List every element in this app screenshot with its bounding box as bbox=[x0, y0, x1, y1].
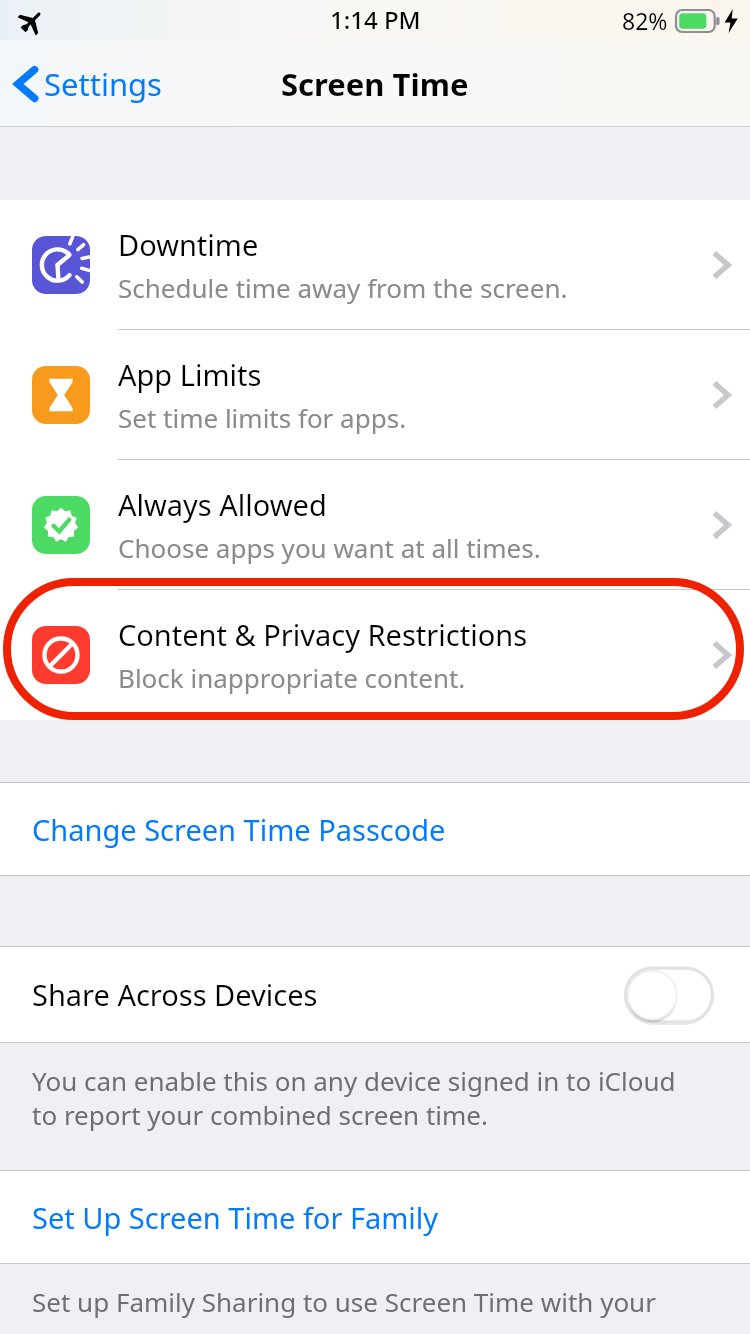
button[interactable]: Content & Privacy Restrictions bbox=[0, 590, 750, 720]
staticText: Content & Privacy Restrictions bbox=[118, 615, 528, 654]
button[interactable]: App Limits bbox=[0, 330, 750, 460]
staticText: You can enable this on any device signed… bbox=[32, 1063, 706, 1132]
button[interactable]: Change Screen Time Passcode bbox=[0, 783, 750, 875]
staticText: Set Up Screen Time for Family bbox=[32, 1198, 439, 1237]
staticText: Choose apps you want at all times. bbox=[118, 530, 541, 565]
staticText: 1:14 PM bbox=[330, 3, 421, 36]
staticText: Downtime bbox=[118, 225, 259, 264]
button[interactable]: Always Allowed bbox=[0, 460, 750, 590]
staticText: Set time limits for apps. bbox=[118, 400, 407, 435]
button[interactable]: Share Across Devices toggle, off bbox=[624, 967, 714, 1023]
button[interactable]: Downtime bbox=[0, 200, 750, 330]
staticText: 82% bbox=[622, 5, 668, 36]
button[interactable]: Settings bbox=[0, 57, 176, 111]
button[interactable]: Share Across Devices bbox=[0, 947, 750, 1042]
staticText: Settings bbox=[44, 63, 162, 105]
staticText: Set up Family Sharing to use Screen Time… bbox=[32, 1284, 706, 1320]
staticText: Screen Time bbox=[281, 63, 469, 105]
staticText: Share Across Devices bbox=[32, 975, 624, 1014]
staticText: Block inappropriate content. bbox=[118, 660, 466, 695]
staticText: App Limits bbox=[118, 355, 262, 394]
button[interactable]: Set Up Screen Time for Family bbox=[0, 1171, 750, 1263]
staticText: Always Allowed bbox=[118, 485, 327, 524]
staticText: Change Screen Time Passcode bbox=[32, 810, 446, 849]
staticText: Schedule time away from the screen. bbox=[118, 270, 568, 305]
